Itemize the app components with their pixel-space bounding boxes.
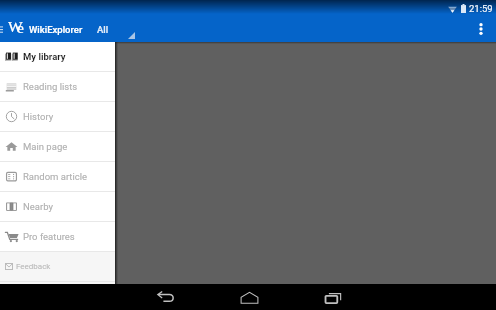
button[interactable]: Home xyxy=(230,284,268,310)
button[interactable]: Open navigation drawer xyxy=(0,16,7,42)
staticText: Main page xyxy=(23,141,68,152)
staticText: W xyxy=(8,18,23,35)
button[interactable]: Reading lists xyxy=(0,72,115,101)
staticText: 21:59 xyxy=(469,3,493,14)
button[interactable]: Main page xyxy=(0,132,115,161)
button[interactable]: Back xyxy=(146,284,184,310)
staticText: Random article xyxy=(23,171,88,182)
button[interactable]: Nearby xyxy=(0,192,115,221)
button[interactable]: More options xyxy=(466,16,496,42)
staticText: Nearby xyxy=(23,201,53,212)
staticText: Pro features xyxy=(23,231,75,242)
staticText: Reading lists xyxy=(23,81,78,92)
staticText: Feedback xyxy=(16,262,51,271)
staticText: All xyxy=(97,24,109,35)
button[interactable]: Feedback xyxy=(0,252,115,281)
button[interactable]: Recents xyxy=(314,284,352,310)
button[interactable]: Pro features xyxy=(0,222,115,251)
button[interactable]: Random article xyxy=(0,162,115,191)
button[interactable]: My library xyxy=(0,42,115,71)
staticText: WikiExplorer xyxy=(29,24,83,35)
staticText: e xyxy=(17,19,24,36)
staticText: History xyxy=(23,111,54,122)
staticText: My library xyxy=(23,51,66,62)
button[interactable]: History xyxy=(0,102,115,131)
